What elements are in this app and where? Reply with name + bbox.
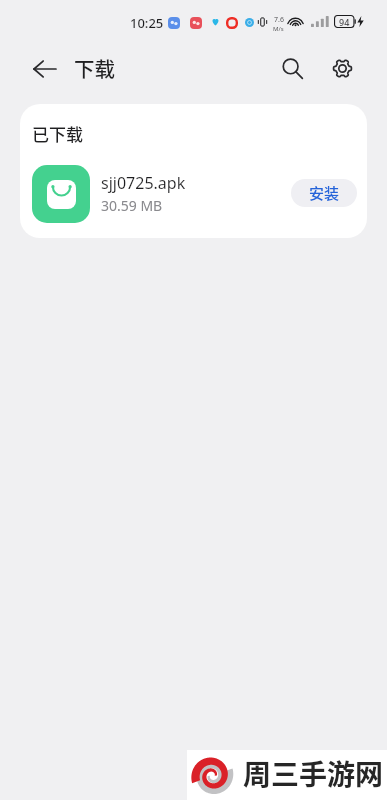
button[interactable]: 安装 <box>291 179 357 207</box>
staticText: 周三手游网 <box>243 753 384 794</box>
staticText: 安装 <box>309 182 340 204</box>
button[interactable]: sjj0725.apk <box>20 152 367 238</box>
button[interactable]: Search <box>270 46 315 91</box>
staticText: 7.6 <box>274 15 284 25</box>
staticText: 10:25 <box>130 14 164 32</box>
staticText: 94 <box>339 16 350 28</box>
staticText: sjj0725.apk <box>101 172 186 194</box>
button[interactable]: Back <box>22 46 67 91</box>
staticText: 已下载 <box>32 121 83 146</box>
staticText: M/s <box>273 25 284 33</box>
staticText: 下载 <box>74 53 115 83</box>
button[interactable]: Settings <box>320 46 365 91</box>
staticText: 30.59 MB <box>101 196 163 215</box>
